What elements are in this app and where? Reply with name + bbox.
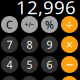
staticText: C bbox=[6, 17, 13, 32]
staticText: 4 bbox=[6, 57, 12, 72]
staticText: × bbox=[66, 36, 73, 52]
staticText: − bbox=[65, 55, 73, 74]
button[interactable]: 6 bbox=[41, 56, 58, 73]
staticText: 8 bbox=[26, 37, 32, 52]
staticText: 6 bbox=[46, 57, 52, 72]
button[interactable]: − bbox=[61, 56, 78, 73]
staticText: 9 bbox=[46, 37, 52, 52]
button[interactable]: 4 bbox=[1, 56, 18, 73]
button[interactable]: × bbox=[61, 36, 78, 53]
button[interactable]: 7 bbox=[1, 36, 18, 53]
button[interactable]: + bbox=[61, 76, 78, 80]
staticText: +/− bbox=[24, 20, 34, 29]
button[interactable]: 2 bbox=[21, 76, 38, 80]
button[interactable]: ÷ bbox=[61, 16, 78, 33]
button[interactable]: 1 bbox=[1, 76, 18, 80]
button[interactable]: 3 bbox=[41, 76, 58, 80]
staticText: 5 bbox=[26, 57, 32, 72]
button[interactable]: 9 bbox=[41, 36, 58, 53]
button[interactable]: 8 bbox=[21, 36, 38, 53]
button[interactable]: % bbox=[41, 16, 58, 33]
staticText: 7 bbox=[6, 37, 12, 52]
staticText: 12,996 bbox=[16, 0, 76, 19]
button[interactable]: +/− bbox=[21, 16, 38, 33]
staticText: ÷ bbox=[65, 16, 73, 33]
button[interactable]: C bbox=[1, 16, 18, 33]
button[interactable]: 5 bbox=[21, 56, 38, 73]
staticText: + bbox=[65, 75, 73, 80]
staticText: % bbox=[45, 17, 54, 32]
